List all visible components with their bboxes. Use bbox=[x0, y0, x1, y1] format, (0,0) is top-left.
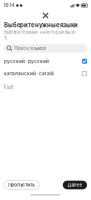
staticText: русский · русский bbox=[4, 58, 49, 64]
button[interactable]: Close bbox=[40, 11, 51, 20]
button[interactable]: Ещё bbox=[0, 80, 18, 90]
staticText: Ещё bbox=[4, 84, 14, 89]
staticText: 10:14 bbox=[3, 3, 14, 8]
staticText: Поиск языков bbox=[14, 46, 46, 51]
staticText: Выберите языки, на которых вы хо bbox=[4, 30, 76, 35]
staticText: каталанский · català bbox=[4, 71, 54, 76]
staticText: Пропустить bbox=[8, 182, 35, 188]
button[interactable]: Пропустить bbox=[4, 181, 39, 189]
staticText: Выберите нужные языки bbox=[4, 22, 78, 29]
staticText: Далее bbox=[67, 182, 82, 188]
button[interactable]: Далее bbox=[63, 181, 87, 189]
button[interactable]: русский · русский bbox=[0, 55, 91, 67]
button[interactable]: каталанский · català bbox=[0, 67, 91, 80]
staticText: X. bbox=[4, 35, 8, 41]
